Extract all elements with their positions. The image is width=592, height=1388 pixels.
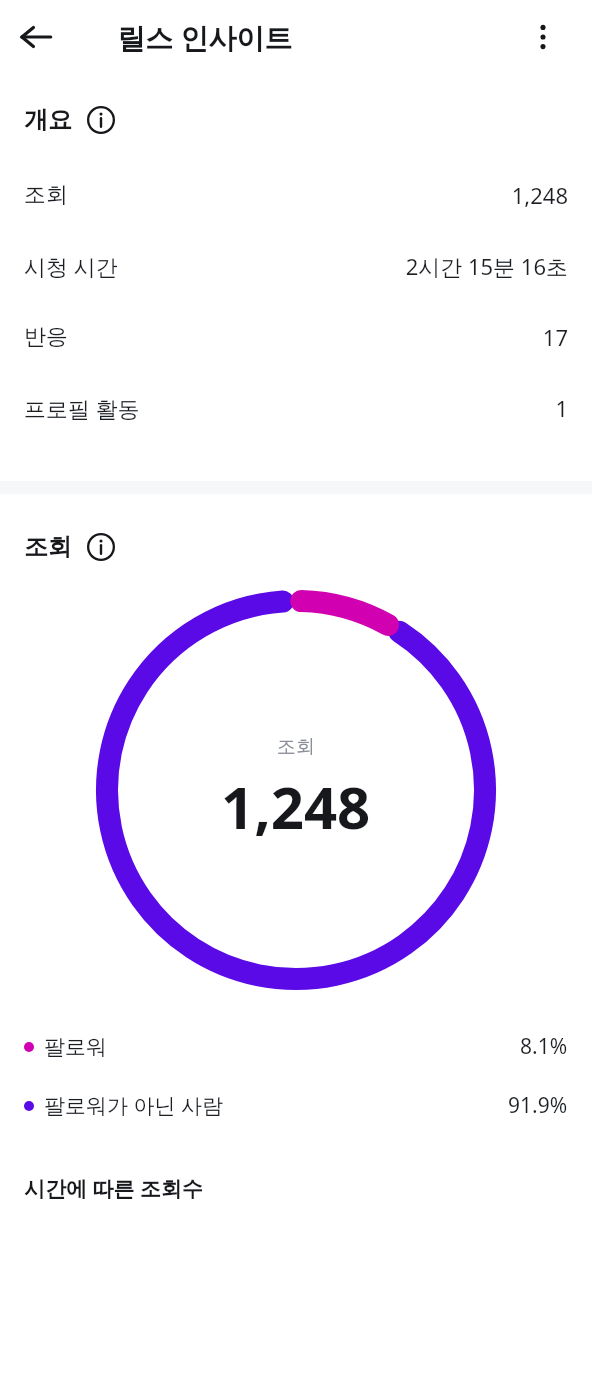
staticText: 1,248 — [221, 767, 371, 846]
staticText: 조회 — [24, 532, 72, 562]
button[interactable]: Information about 조회 — [84, 530, 118, 564]
staticText: 91.9% — [508, 1091, 568, 1120]
button[interactable]: Back — [8, 9, 64, 65]
button[interactable]: 시청 시간 — [0, 230, 592, 301]
button[interactable]: More options — [517, 11, 569, 63]
staticText: 시청 시간 — [24, 251, 118, 281]
staticText: 조회 — [24, 181, 68, 209]
button[interactable]: 조회 — [0, 159, 592, 230]
button[interactable]: 프로필 활동 — [0, 372, 592, 443]
staticText: 프로필 활동 — [24, 393, 140, 423]
staticText: 릴스 인사이트 — [117, 18, 293, 56]
staticText: 시간에 따른 조회수 — [24, 1174, 203, 1203]
staticText: 개요 — [24, 105, 72, 135]
button[interactable]: 팔로워가 아닌 사람 — [0, 1091, 592, 1120]
button[interactable]: 반응 — [0, 301, 592, 372]
staticText: 1 — [555, 393, 568, 423]
staticText: 1,248 — [511, 180, 568, 210]
staticText: 8.1% — [520, 1032, 568, 1061]
staticText: 조회 — [277, 735, 315, 759]
button[interactable]: 팔로워 — [0, 1032, 592, 1061]
staticText: 17 — [542, 322, 568, 352]
button[interactable]: Information about 개요 — [84, 103, 118, 137]
staticText: 2시간 15분 16초 — [405, 251, 568, 281]
staticText: 팔로워가 아닌 사람 — [44, 1091, 223, 1120]
staticText: 반응 — [24, 323, 68, 351]
staticText: 팔로워 — [44, 1034, 107, 1060]
